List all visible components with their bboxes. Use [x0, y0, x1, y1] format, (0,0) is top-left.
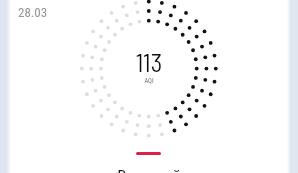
staticText: 28.03: [18, 5, 48, 20]
button[interactable]: 28.03: [9, 0, 289, 173]
staticText: AQI: [115, 77, 183, 85]
staticText: 113: [115, 47, 183, 77]
other: Air quality index gauge: [9, 0, 289, 173]
staticText: Вредный: [103, 166, 195, 173]
